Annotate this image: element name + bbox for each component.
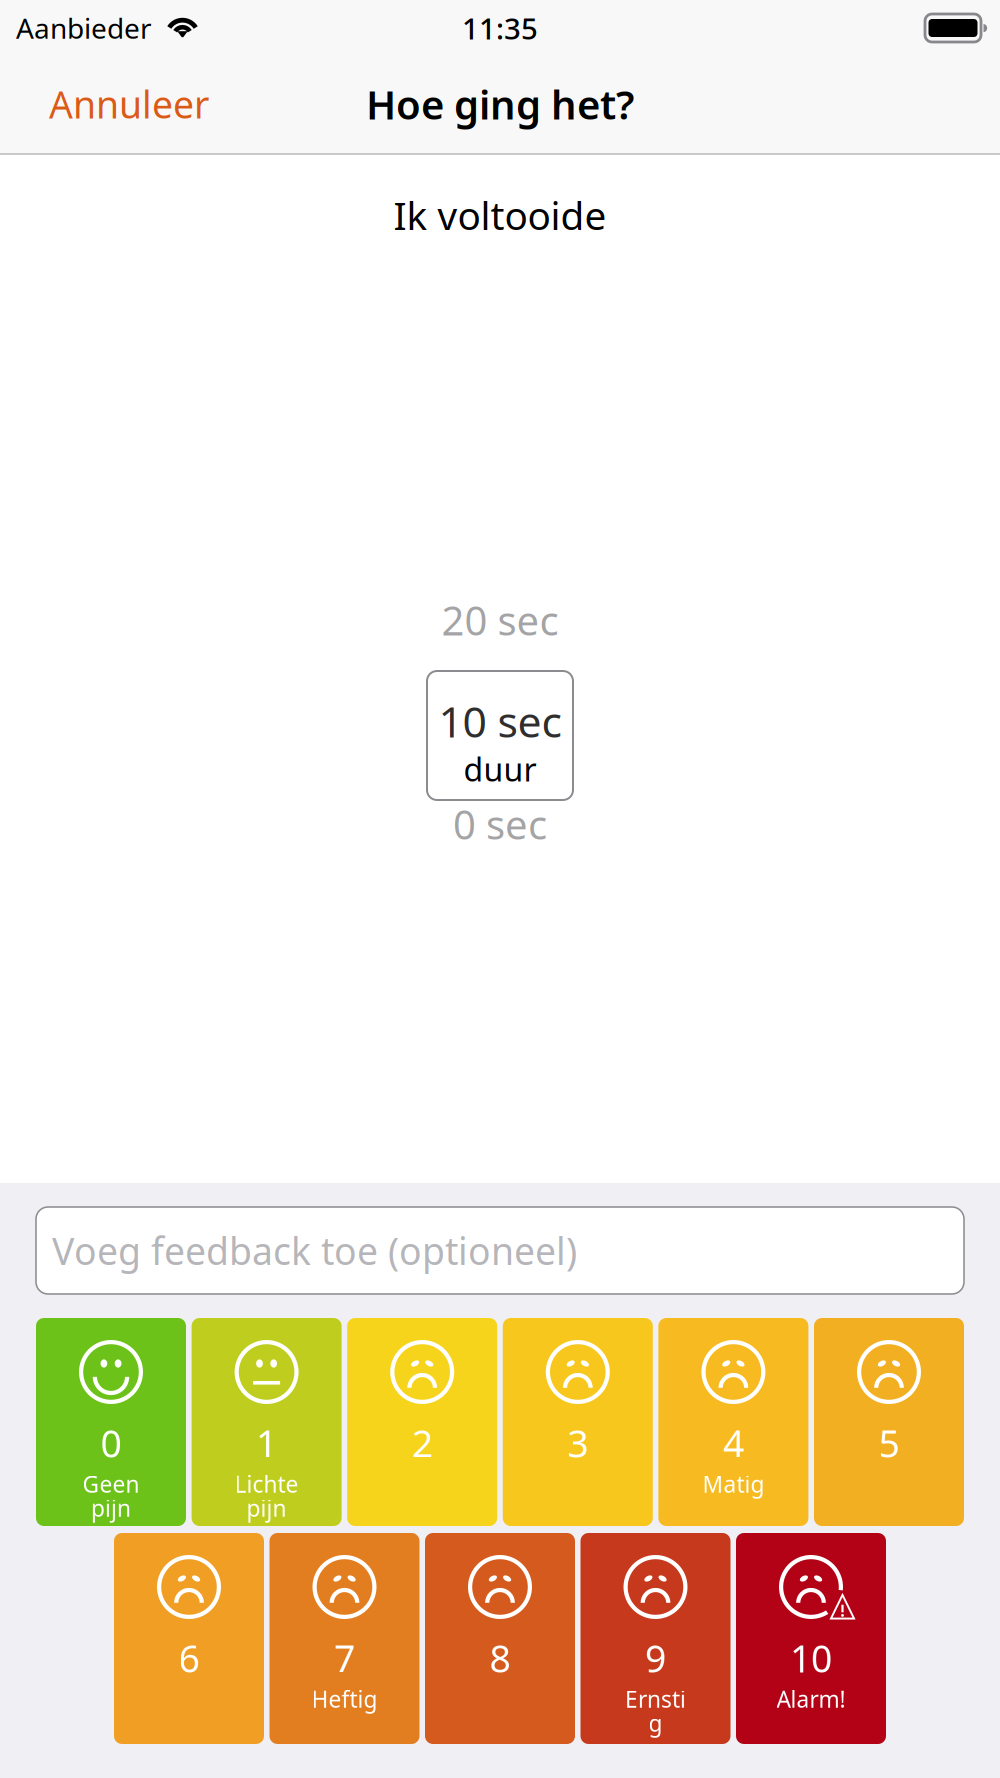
button[interactable]: 4 (658, 1318, 808, 1526)
staticText: 10 (790, 1633, 832, 1683)
staticText: Aanbieder (16, 9, 152, 47)
staticText: 6 (178, 1633, 199, 1683)
staticText: Matig (702, 1469, 764, 1499)
button[interactable]: 10 (736, 1533, 886, 1744)
staticText: Geen (82, 1469, 139, 1499)
staticText: 11:35 (462, 8, 538, 47)
button[interactable]: Voeg feedback toe (optioneel) (36, 1207, 964, 1294)
staticText: Ernsti (625, 1684, 686, 1714)
button[interactable]: 5 (814, 1318, 964, 1526)
staticText: Voeg feedback toe (optioneel) (52, 1226, 577, 1275)
staticText: 2 (412, 1418, 433, 1468)
button[interactable]: 2 (347, 1318, 497, 1526)
button[interactable]: 0 (36, 1318, 186, 1526)
staticText: 8 (489, 1633, 510, 1683)
staticText: Lichte (235, 1469, 299, 1499)
button[interactable]: 3 (503, 1318, 653, 1526)
staticText: Alarm! (776, 1684, 845, 1714)
staticText: 0 (100, 1418, 121, 1468)
button[interactable]: 1 (192, 1318, 342, 1526)
staticText: 3 (567, 1418, 588, 1468)
button[interactable]: 8 (425, 1533, 575, 1744)
staticText: 4 (723, 1418, 744, 1468)
button[interactable]: 9 (580, 1533, 730, 1744)
staticText: duur (463, 748, 536, 790)
staticText: 1 (256, 1418, 277, 1468)
staticText: pijn (91, 1493, 131, 1523)
staticText: g (648, 1708, 662, 1738)
staticText: Ik voltooide (393, 189, 606, 241)
staticText: pijn (247, 1493, 287, 1523)
staticText: Heftig (311, 1684, 377, 1714)
staticText: Hoe ging het? (366, 77, 634, 130)
staticText: 5 (878, 1418, 899, 1468)
staticText: 7 (334, 1633, 355, 1683)
staticText: 20 sec (441, 593, 558, 646)
button[interactable]: 7 (269, 1533, 419, 1744)
button[interactable]: Annuleer (49, 54, 279, 154)
staticText: Annuleer (49, 79, 209, 129)
button[interactable]: 6 (114, 1533, 264, 1744)
staticText: 10 sec (438, 693, 561, 749)
staticText: 0 sec (453, 797, 547, 850)
staticText: 9 (645, 1633, 666, 1683)
